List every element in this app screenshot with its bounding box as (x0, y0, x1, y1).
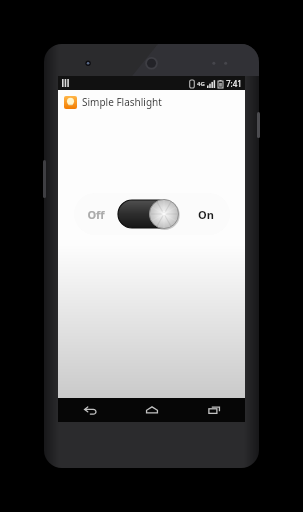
staticText: On (198, 207, 214, 222)
button[interactable]: Home (121, 398, 183, 422)
staticText: Off (87, 207, 105, 222)
button[interactable]: Back (58, 398, 121, 422)
staticText: Simple Flashlight (82, 95, 162, 109)
staticText: 7:41 (226, 78, 242, 89)
button[interactable]: Flashlight toggle, on (118, 200, 182, 228)
button[interactable]: Off (74, 193, 230, 235)
staticText: 4G (197, 80, 205, 88)
button[interactable]: Recent apps (183, 398, 245, 422)
